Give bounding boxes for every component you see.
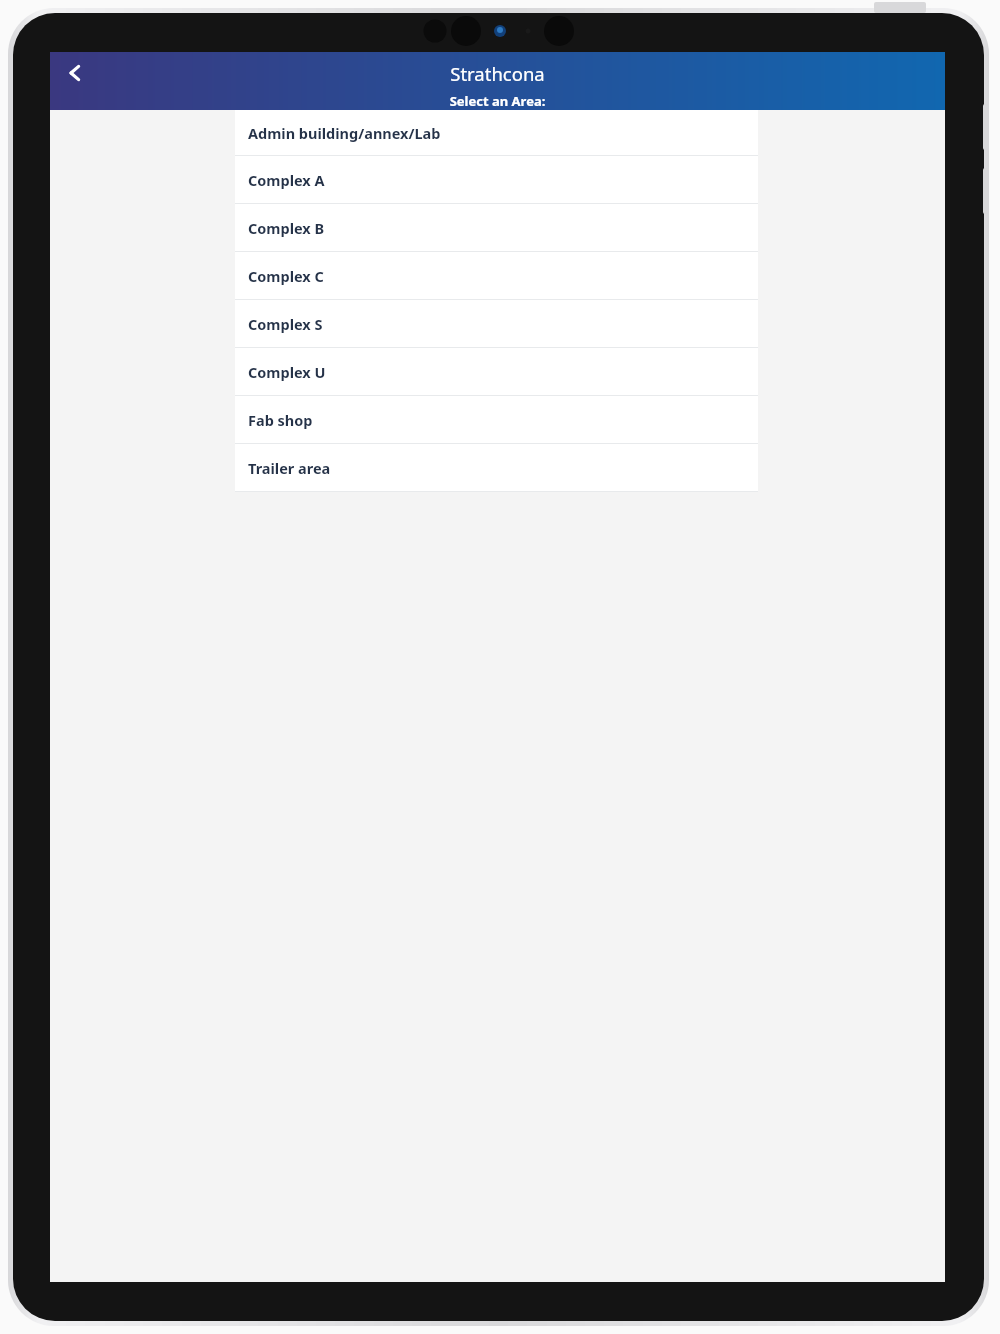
button[interactable]: Complex A (235, 156, 758, 203)
button[interactable]: Admin building/annex/Lab (235, 110, 758, 155)
staticText: Trailer area (248, 458, 331, 478)
staticText: Select an Area: (50, 92, 945, 110)
button[interactable]: Back (54, 52, 96, 94)
staticText: Admin building/annex/Lab (248, 123, 441, 143)
staticText: Complex C (248, 266, 324, 286)
button[interactable]: Trailer area (235, 444, 758, 491)
staticText: Complex A (248, 170, 325, 190)
button[interactable]: Complex U (235, 348, 758, 395)
staticText: Complex U (248, 362, 326, 382)
staticText: Strathcona (50, 61, 945, 86)
button[interactable]: Complex B (235, 204, 758, 251)
button[interactable]: Complex S (235, 300, 758, 347)
button[interactable]: Complex C (235, 252, 758, 299)
staticText: Complex S (248, 314, 323, 334)
button[interactable]: Fab shop (235, 396, 758, 443)
staticText: Complex B (248, 218, 325, 238)
staticText: Fab shop (248, 410, 313, 430)
